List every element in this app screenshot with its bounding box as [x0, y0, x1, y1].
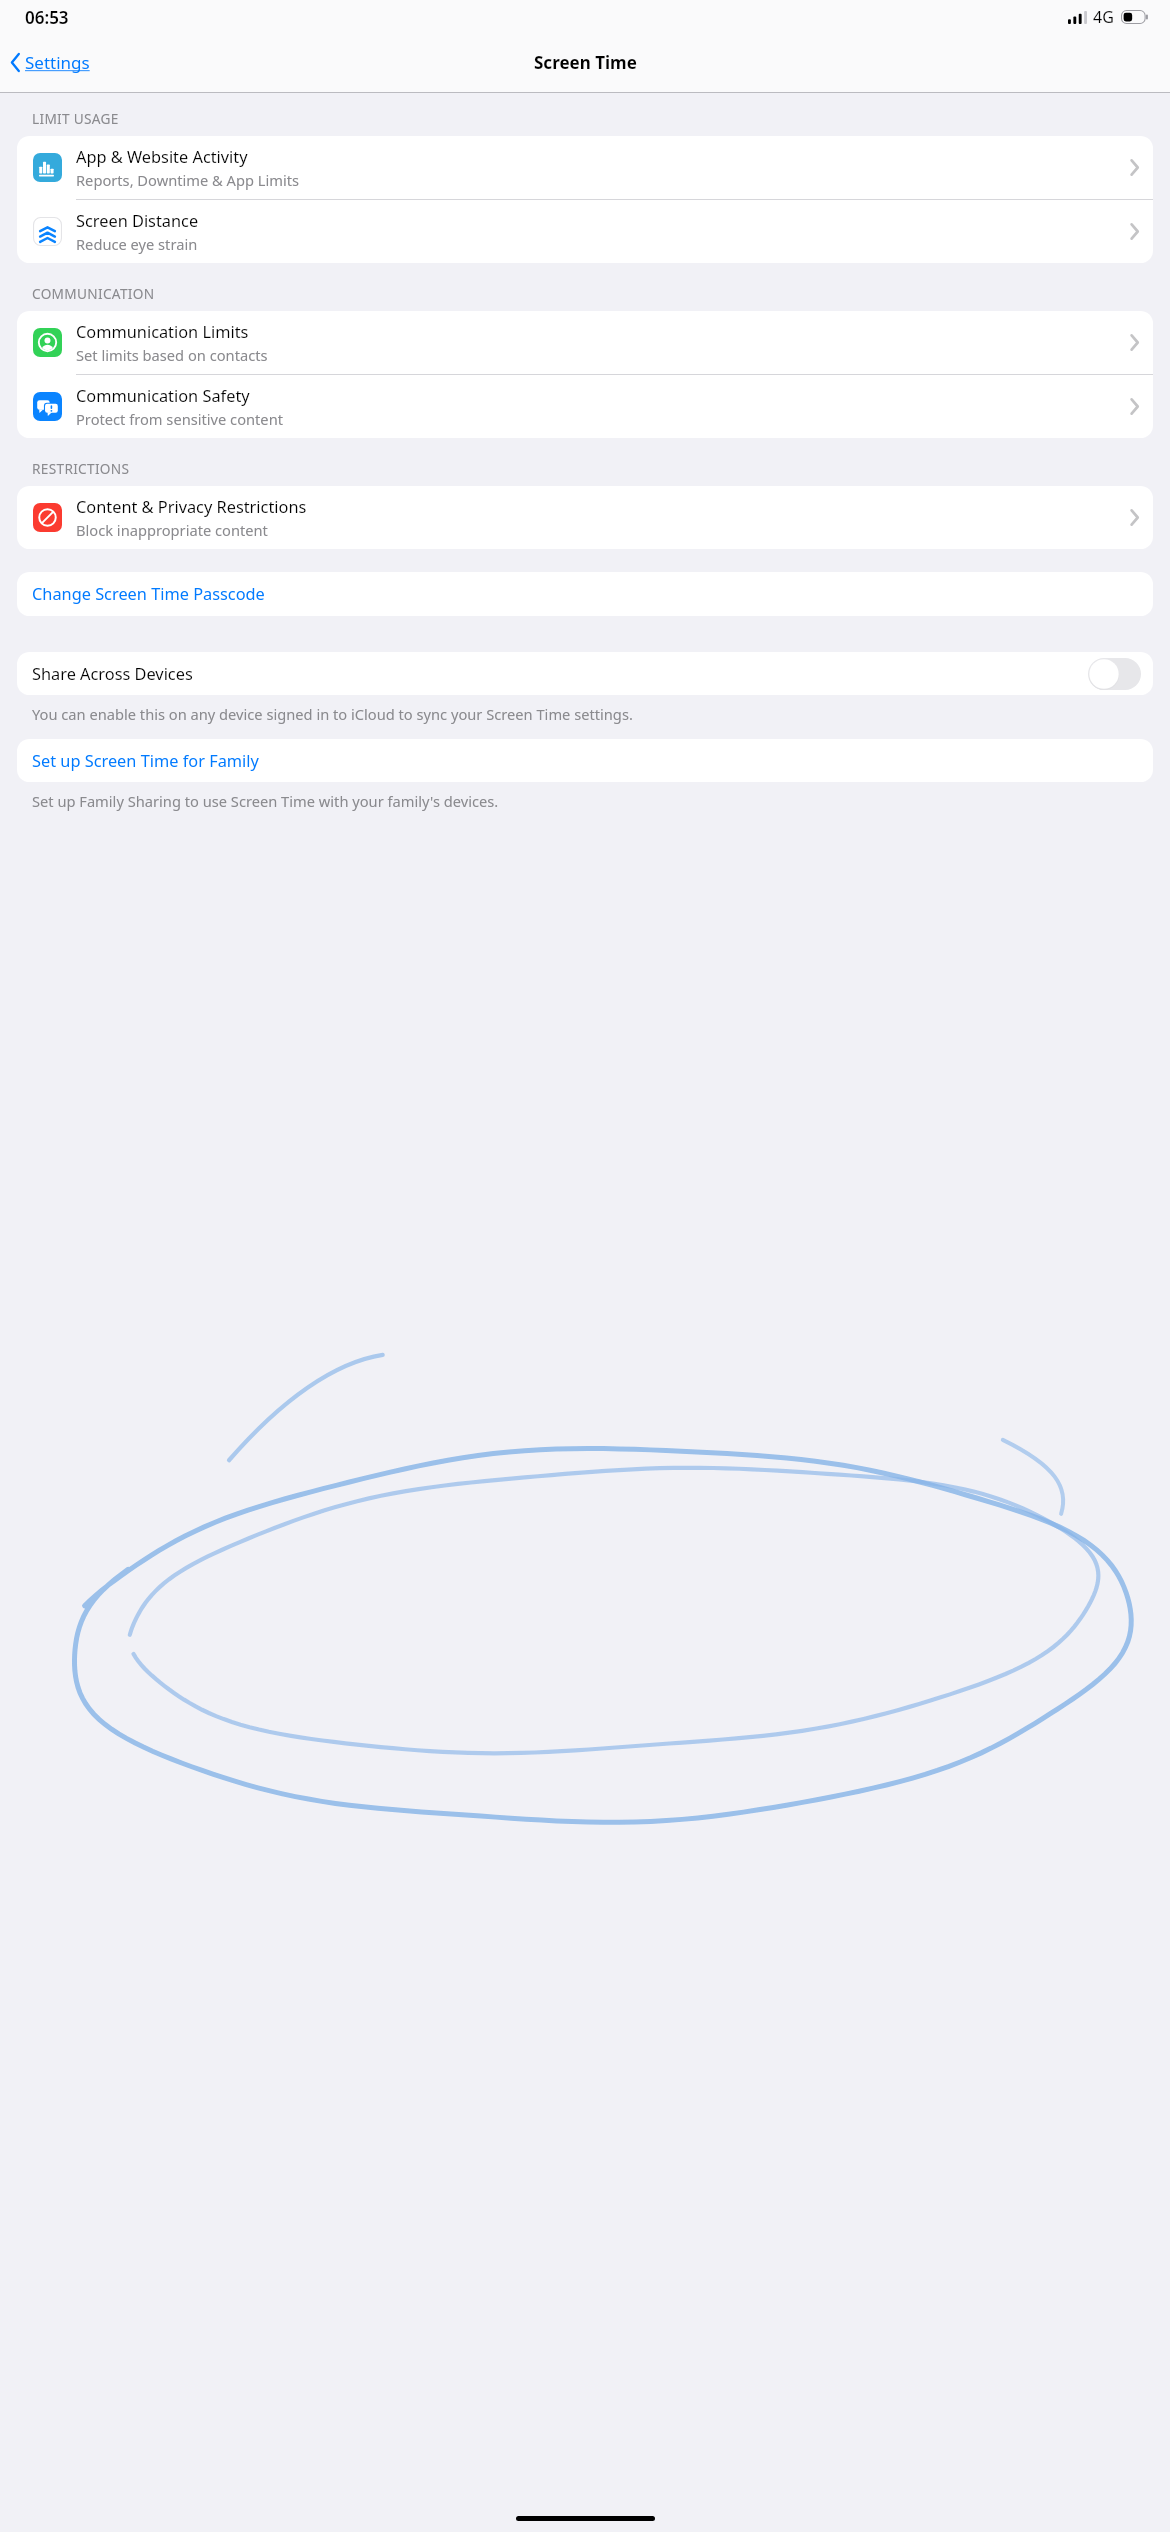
staticText: RESTRICTIONS	[32, 459, 130, 478]
button[interactable]: Change Screen Time Passcode	[17, 572, 1153, 616]
staticText: Share Across Devices	[32, 663, 193, 685]
button[interactable]: Communication Safety	[17, 375, 1153, 438]
staticText: Set limits based on contacts	[76, 345, 268, 365]
button[interactable]: Screen Distance	[17, 200, 1153, 263]
staticText: Reduce eye strain	[76, 234, 198, 254]
staticText: COMMUNICATION	[32, 284, 155, 303]
button[interactable]: Communication Limits	[17, 311, 1153, 374]
staticText: App & Website Activity	[76, 146, 248, 168]
button[interactable]: App & Website Activity	[17, 136, 1153, 199]
button[interactable]: Back to Settings	[7, 46, 93, 79]
staticText: Set up Family Sharing to use Screen Time…	[32, 791, 499, 811]
staticText: Reports, Downtime & App Limits	[76, 170, 300, 190]
staticText: Protect from sensitive content	[76, 409, 283, 429]
staticText: Screen Distance	[76, 210, 199, 232]
staticText: LIMIT USAGE	[32, 109, 119, 128]
staticText: Change Screen Time Passcode	[32, 583, 265, 605]
other: Back to Settings	[10, 53, 21, 72]
staticText: Set up Screen Time for Family	[32, 750, 259, 772]
button[interactable]: Content & Privacy Restrictions	[17, 486, 1153, 549]
button[interactable]: Set up Screen Time for Family	[17, 739, 1153, 782]
staticText: Block inappropriate content	[76, 520, 268, 540]
staticText: 4G	[1093, 6, 1114, 28]
staticText: Screen Time	[534, 51, 637, 74]
staticText: Communication Safety	[76, 385, 250, 407]
button[interactable]: Share Across Devices	[17, 652, 1153, 695]
staticText: 06:53	[25, 6, 69, 29]
staticText: Settings	[25, 51, 90, 74]
staticText: Content & Privacy Restrictions	[76, 496, 307, 518]
other: Share Across Devices toggle	[1088, 658, 1141, 690]
staticText: You can enable this on any device signed…	[32, 704, 633, 724]
staticText: Communication Limits	[76, 321, 249, 343]
